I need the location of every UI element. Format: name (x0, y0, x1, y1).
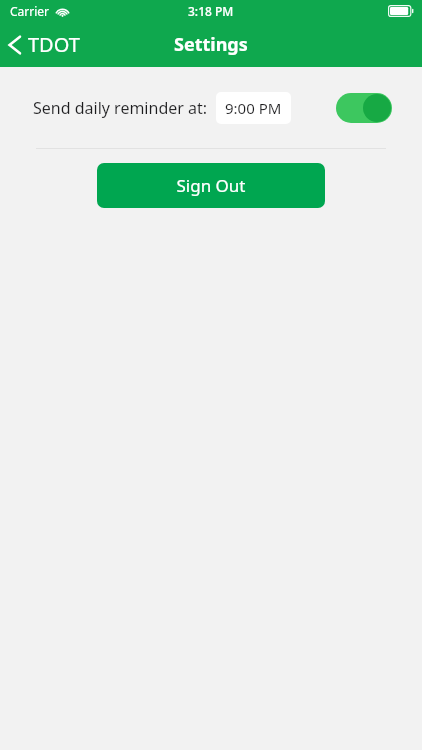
button[interactable]: 9:00 PM (216, 92, 291, 124)
button[interactable]: Sign Out (97, 163, 325, 208)
staticText: Sign Out (176, 174, 246, 197)
staticText: 9:00 PM (225, 98, 282, 118)
staticText: Settings (174, 32, 248, 57)
staticText: Carrier (10, 3, 50, 19)
button[interactable]: Daily reminder toggle, on (336, 93, 392, 123)
staticText: Send daily reminder at: (33, 97, 208, 119)
staticText: TDOT (28, 31, 80, 58)
staticText: 3:18 PM (188, 3, 234, 19)
button[interactable]: TDOT (0, 22, 90, 67)
